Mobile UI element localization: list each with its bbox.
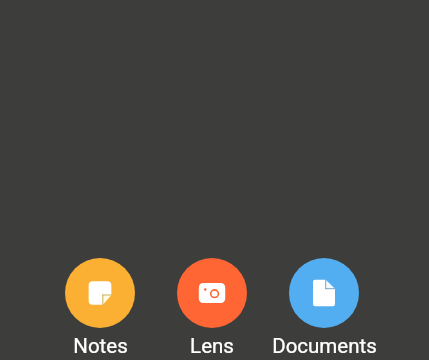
button[interactable]: Lens [156,258,268,358]
button[interactable]: Notes [44,258,156,358]
staticText: Notes [73,334,128,358]
button[interactable]: Documents [268,258,380,358]
other: Lens [177,258,247,328]
other: Notes [65,258,135,328]
staticText: Lens [190,334,234,358]
other: Documents [289,258,359,328]
staticText: Documents [272,334,377,358]
